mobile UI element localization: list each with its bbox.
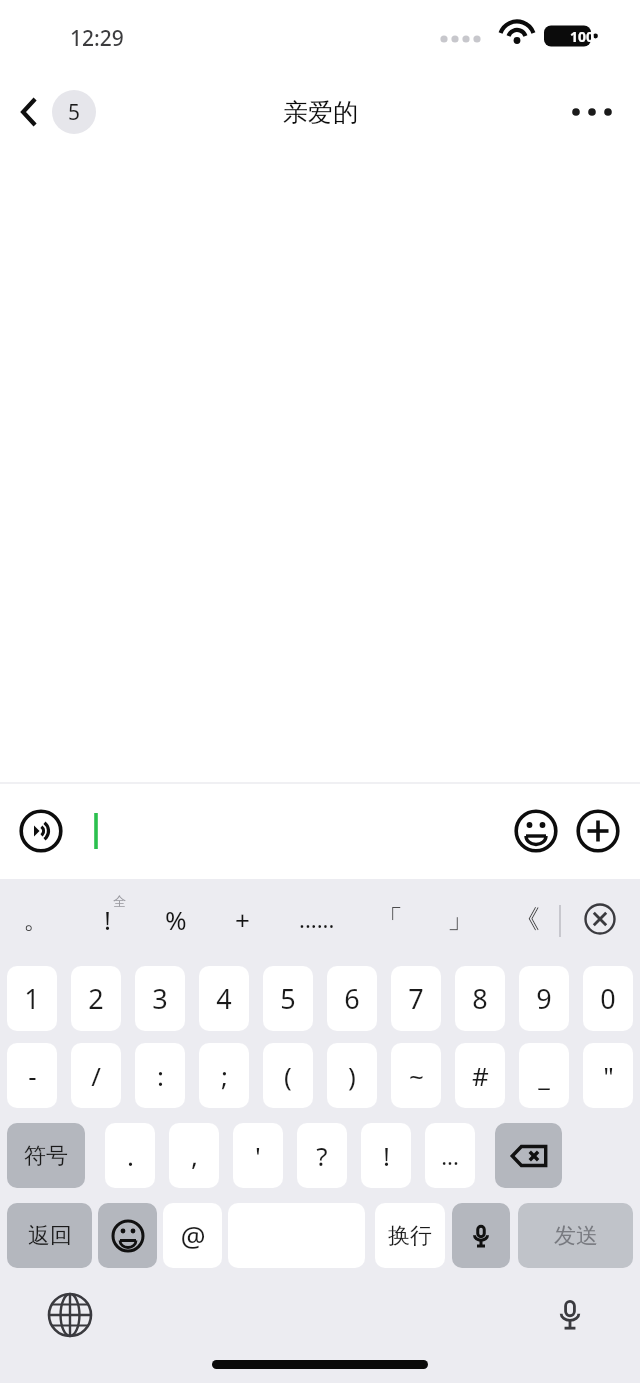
button[interactable]: Voice dictation <box>452 1203 510 1268</box>
button[interactable]: : <box>135 1043 185 1108</box>
button[interactable]: Backspace <box>495 1123 562 1188</box>
button[interactable]: ...... <box>287 887 347 951</box>
button[interactable]: + <box>212 887 272 951</box>
button[interactable]: ~ <box>391 1043 441 1108</box>
button[interactable]: 」 <box>430 887 490 951</box>
staticText: @ <box>180 1217 206 1255</box>
staticText: ...... <box>299 904 335 934</box>
staticText: + <box>235 902 250 937</box>
button[interactable]: 发送 <box>518 1203 633 1268</box>
staticText: 换行 <box>388 1222 432 1250</box>
staticText: ? <box>316 1138 328 1173</box>
staticText: , <box>191 1138 198 1173</box>
staticText: ! <box>383 1138 390 1173</box>
button[interactable]: 返回 <box>7 1203 92 1268</box>
button[interactable]: Back, 5 unread <box>14 82 96 142</box>
staticText: 全 <box>113 893 126 909</box>
staticText: 符号 <box>24 1142 68 1170</box>
button[interactable]: 「 <box>360 887 420 951</box>
staticText: / <box>91 1058 101 1093</box>
button[interactable]: 。 <box>6 887 66 951</box>
button[interactable]: ? <box>297 1123 347 1188</box>
staticText: ! <box>104 902 111 937</box>
staticText: - <box>28 1058 37 1093</box>
staticText: 发送 <box>554 1222 598 1250</box>
staticText: # <box>472 1058 489 1093</box>
button[interactable]: Close suggestions <box>574 888 626 950</box>
staticText: ~ <box>409 1058 424 1093</box>
staticText: ... <box>441 1141 459 1171</box>
staticText: 1 <box>24 980 40 1017</box>
button[interactable]: ! <box>77 887 137 951</box>
staticText: % <box>165 902 187 937</box>
button[interactable]: More functions <box>572 805 624 857</box>
staticText: 5 <box>280 980 296 1017</box>
staticText: 6 <box>344 980 360 1017</box>
staticText: 7 <box>408 980 424 1017</box>
staticText: 0 <box>600 980 616 1017</box>
button[interactable]: ) <box>327 1043 377 1108</box>
button[interactable]: More options <box>564 84 620 140</box>
staticText: 」 <box>447 903 473 936</box>
button[interactable]: 3 <box>135 966 185 1031</box>
button[interactable]: Emoji keyboard <box>98 1203 157 1268</box>
staticText: 5 <box>68 98 81 127</box>
staticText: 3 <box>152 980 168 1017</box>
staticText: . <box>127 1138 134 1173</box>
button[interactable]: 4 <box>199 966 249 1031</box>
button[interactable]: - <box>7 1043 57 1108</box>
staticText: ) <box>348 1058 356 1093</box>
button[interactable]: 符号 <box>7 1123 85 1188</box>
button[interactable]: 7 <box>391 966 441 1031</box>
button[interactable]: 2 <box>71 966 121 1031</box>
button[interactable]: 0 <box>583 966 633 1031</box>
staticText: 4 <box>216 980 232 1017</box>
button[interactable]: 1 <box>7 966 57 1031</box>
button[interactable]: Switch keyboard language <box>42 1287 98 1343</box>
button[interactable]: ; <box>199 1043 249 1108</box>
staticText: 2 <box>88 980 104 1017</box>
button[interactable]: 《 <box>497 887 557 951</box>
staticText: 12:29 <box>70 24 124 53</box>
staticText: 9 <box>536 980 552 1017</box>
button[interactable]: ' <box>233 1123 283 1188</box>
staticText: 亲爱的 <box>283 97 358 128</box>
button[interactable]: _ <box>519 1043 569 1108</box>
button[interactable]: 9 <box>519 966 569 1031</box>
button[interactable]: 换行 <box>375 1203 445 1268</box>
button[interactable]: 5 <box>263 966 313 1031</box>
button[interactable]: ( <box>263 1043 313 1108</box>
staticText: ( <box>284 1058 292 1093</box>
staticText: ; <box>221 1058 228 1093</box>
staticText: 100 <box>570 27 595 46</box>
button[interactable]: / <box>71 1043 121 1108</box>
button[interactable]: " <box>583 1043 633 1108</box>
staticText: _ <box>538 1058 550 1093</box>
staticText: 8 <box>472 980 488 1017</box>
button[interactable]: % <box>146 887 206 951</box>
button[interactable]: 6 <box>327 966 377 1031</box>
button[interactable]: @ <box>163 1203 222 1268</box>
staticText: 返回 <box>28 1222 72 1250</box>
staticText: 。 <box>23 903 49 936</box>
staticText: ' <box>255 1138 261 1173</box>
staticText: 《 <box>514 903 540 936</box>
button[interactable]: . <box>105 1123 155 1188</box>
button[interactable]: 8 <box>455 966 505 1031</box>
button[interactable]: # <box>455 1043 505 1108</box>
staticText: : <box>157 1058 164 1093</box>
staticText: 「 <box>377 903 403 936</box>
button[interactable]: Voice input <box>542 1287 598 1343</box>
button[interactable]: , <box>169 1123 219 1188</box>
button[interactable]: Voice input <box>18 808 64 854</box>
staticText: " <box>603 1058 614 1093</box>
button[interactable]: Emoji <box>510 805 562 857</box>
button[interactable]: ... <box>425 1123 475 1188</box>
button[interactable]: ! <box>361 1123 411 1188</box>
